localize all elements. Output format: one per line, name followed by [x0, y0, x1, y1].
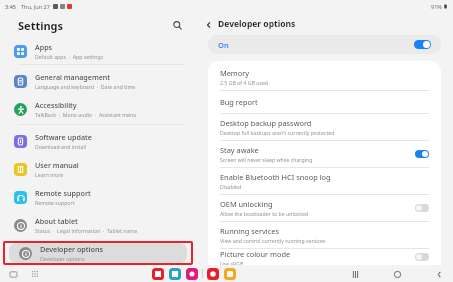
staticText: Remote support	[35, 188, 91, 198]
button[interactable]: Memory	[208, 64, 441, 90]
button[interactable]: App	[207, 268, 219, 280]
staticText: Allow the bootloader to be unlocked	[220, 210, 309, 217]
button[interactable]: Running services	[208, 222, 441, 248]
button[interactable]: OEM unlocking	[208, 195, 441, 221]
staticText: Use sRGB	[220, 260, 244, 265]
staticText: Default apps · App settings	[35, 53, 104, 60]
staticText: Disabled	[220, 183, 242, 190]
staticText: Language and keyboard · Date and time	[35, 83, 136, 90]
button[interactable]: All apps	[30, 269, 40, 279]
staticText: Developer options	[218, 18, 296, 30]
staticText: 3:45	[5, 3, 16, 10]
staticText: Stay awake	[220, 145, 259, 155]
button[interactable]: Back	[433, 268, 445, 280]
staticText: 91%	[431, 3, 442, 10]
staticText: Download and install	[35, 143, 87, 150]
staticText: User manual	[35, 160, 79, 170]
staticText: Apps	[35, 42, 53, 52]
button[interactable]: Back	[202, 18, 215, 31]
button[interactable]: App	[169, 268, 181, 280]
button[interactable]: Accessibility	[0, 96, 196, 122]
staticText: Thu, Jun 27	[21, 3, 50, 10]
button[interactable]: Search	[170, 18, 184, 32]
button[interactable]: Toggle on	[414, 40, 431, 49]
button[interactable]: On	[208, 35, 441, 54]
button[interactable]: User manual	[0, 156, 196, 182]
staticText: General management	[35, 72, 111, 82]
staticText: Remote support	[35, 199, 75, 206]
button[interactable]: Home	[391, 268, 403, 280]
button[interactable]: App	[186, 268, 198, 280]
button[interactable]: Apps	[0, 38, 196, 64]
button[interactable]: Toggle off	[415, 204, 429, 212]
button[interactable]: Toggle off	[415, 253, 429, 261]
button[interactable]: Toggle on	[415, 150, 429, 158]
staticText: Picture colour mode	[220, 249, 291, 259]
staticText: Learn more	[35, 171, 64, 178]
staticText: About tablet	[35, 216, 78, 226]
button[interactable]: Remote support	[0, 184, 196, 210]
button[interactable]: Software update	[0, 128, 196, 154]
button[interactable]: App	[224, 268, 236, 280]
button[interactable]: Picture colour mode	[208, 249, 441, 265]
button[interactable]: Enable Bluetooth HCI snoop log	[208, 168, 441, 194]
button[interactable]: Bug report	[208, 91, 441, 113]
staticText: Developer options	[40, 255, 85, 262]
button[interactable]: About tablet	[0, 212, 196, 238]
button[interactable]: Stay awake	[208, 141, 441, 167]
staticText: View and control currently running servi…	[220, 237, 326, 244]
staticText: Status · Legal information · Tablet name	[35, 227, 138, 234]
button[interactable]: Developer options	[9, 243, 187, 263]
button[interactable]: General management	[0, 68, 196, 94]
staticText: Bug report	[220, 97, 258, 107]
staticText: Screen will never sleep while charging	[220, 156, 313, 163]
staticText: Memory	[220, 68, 250, 78]
staticText: Software update	[35, 132, 92, 142]
staticText: Desktop full backups aren't currently pr…	[220, 129, 335, 136]
staticText: Settings	[18, 18, 64, 33]
staticText: Enable Bluetooth HCI snoop log	[220, 172, 331, 182]
button[interactable]: Recents	[349, 268, 361, 280]
staticText: Running services	[220, 226, 279, 236]
staticText: Developer options	[40, 244, 103, 254]
button[interactable]: Desktop backup password	[208, 114, 441, 140]
staticText: Desktop backup password	[220, 118, 312, 128]
staticText: On	[218, 40, 229, 50]
staticText: Accessibility	[35, 100, 77, 110]
staticText: OEM unlocking	[220, 199, 273, 209]
button[interactable]: App	[152, 268, 164, 280]
staticText: 2.5 GB of 4 GB used	[220, 79, 269, 86]
staticText: TalkBack · Mono audio · Assistant menu	[35, 111, 137, 118]
button[interactable]: Recents panel	[8, 269, 18, 279]
